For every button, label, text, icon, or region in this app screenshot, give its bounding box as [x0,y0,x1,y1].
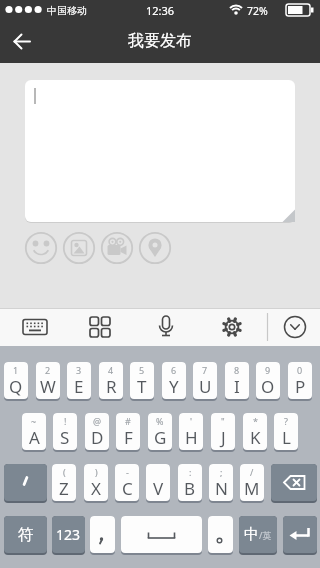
button[interactable]: 6 [162,362,186,399]
staticText: W [40,375,56,398]
button[interactable]: 5 [130,362,154,399]
button[interactable] [15,308,55,346]
button[interactable] [146,308,186,346]
button[interactable]: : [178,464,202,501]
staticText: P [295,375,306,398]
button[interactable] [8,28,36,56]
staticText: V [153,477,164,500]
staticText: ) [95,466,98,477]
button[interactable] [283,516,317,553]
staticText: % [156,415,164,426]
button[interactable]: 3 [67,362,91,399]
staticText: U [199,375,212,398]
button[interactable] [271,464,317,501]
staticText: 符 [18,525,34,545]
button[interactable]: 9 [256,362,280,399]
button[interactable]: ) [84,464,108,501]
staticText: ( [63,466,66,477]
staticText: * [253,415,258,426]
staticText: X [91,477,101,500]
staticText: " [221,415,225,426]
staticText: D [91,426,104,449]
button[interactable] [90,516,115,553]
staticText: 9 [265,364,271,375]
staticText: Y [169,375,179,398]
staticText: ? [284,415,288,426]
staticText: 12:36 [0,3,320,18]
button[interactable]: 8 [225,362,249,399]
button[interactable] [25,80,295,222]
staticText: ' [190,415,193,426]
button[interactable]: 0 [288,362,312,399]
staticText: ! [64,415,67,426]
button[interactable]: 1 [4,362,28,399]
staticText: 123 [56,525,81,544]
button[interactable]: _ [146,464,170,501]
staticText: 8 [234,364,240,375]
staticText: H [185,426,198,449]
button[interactable]: ; [209,464,233,501]
staticText: Z [59,477,69,500]
staticText: ; [220,466,223,477]
staticText: L [282,426,291,449]
button[interactable]: ? [274,413,298,450]
staticText: 0 [297,364,303,375]
button[interactable]: % [148,413,172,450]
staticText: 3 [76,364,82,375]
button[interactable]: * [243,413,267,450]
button[interactable]: ( [52,464,76,501]
staticText: 7 [202,364,208,375]
staticText: N [215,477,228,500]
staticText: A [29,426,40,449]
button[interactable] [208,516,233,553]
staticText: F [124,426,133,449]
staticText: 1 [13,364,19,375]
staticText: - [126,466,129,477]
button[interactable] [212,308,252,346]
button[interactable]: 123 [52,516,85,553]
button[interactable]: 2 [36,362,60,399]
button[interactable]: ~ [22,413,46,450]
button[interactable]: ' [179,413,203,450]
button[interactable] [80,308,120,346]
staticText: # [125,415,131,426]
staticText: 我要发布 [0,31,320,51]
staticText: @ [93,415,102,426]
button[interactable]: @ [85,413,109,450]
button[interactable]: 中 [239,516,277,553]
staticText: : [189,466,192,477]
staticText: B [184,477,196,500]
staticText: 中 [244,525,259,544]
staticText: 72% [247,4,268,18]
staticText: K [250,426,261,449]
staticText: O [261,375,275,398]
staticText: 中国移动 [47,4,87,17]
staticText: S [60,426,70,449]
staticText: G [154,426,167,449]
button[interactable] [4,464,47,501]
button[interactable]: / [240,464,264,501]
button[interactable]: 4 [99,362,123,399]
staticText: 4 [108,364,114,375]
staticText: 6 [171,364,177,375]
button[interactable]: - [115,464,139,501]
button[interactable] [121,516,202,553]
staticText: J [221,426,226,449]
button[interactable] [278,308,314,346]
staticText: Q [9,375,23,398]
button[interactable]: 符 [4,516,47,553]
staticText: 5 [139,364,145,375]
staticText: C [122,477,133,500]
button[interactable]: " [211,413,235,450]
button[interactable]: ! [53,413,77,450]
staticText: I [234,375,240,398]
button[interactable]: # [116,413,140,450]
staticText: T [137,375,147,398]
staticText: M [244,477,260,500]
button[interactable]: 7 [193,362,217,399]
staticText: E [74,375,84,398]
staticText: ~ [31,415,37,426]
staticText: 2 [45,364,51,375]
staticText: / [250,466,254,477]
